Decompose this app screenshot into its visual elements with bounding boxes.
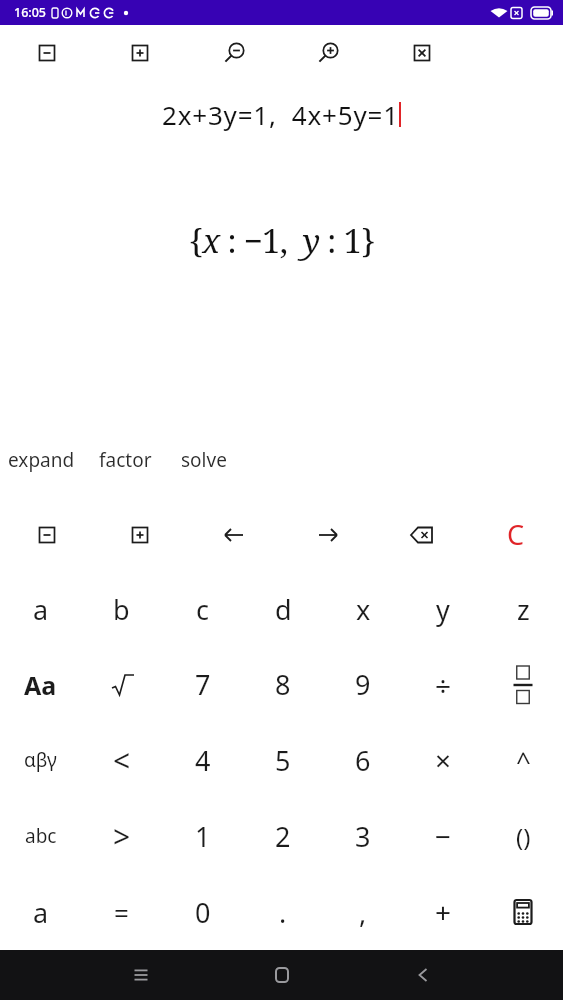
button[interactable] <box>281 25 375 81</box>
button[interactable]: 3 <box>323 798 403 874</box>
button[interactable] <box>81 647 162 722</box>
button[interactable]: d <box>243 572 323 647</box>
staticText: = <box>114 895 129 930</box>
staticText: > <box>113 816 131 857</box>
staticText: y <box>436 591 450 628</box>
button[interactable]: a <box>0 874 81 950</box>
button[interactable]: − <box>403 798 483 874</box>
button[interactable]: 7 <box>162 647 243 722</box>
staticText: a <box>33 591 49 628</box>
staticText: c <box>196 591 209 628</box>
staticText: factor <box>99 447 152 473</box>
button[interactable]: ^ <box>483 722 563 798</box>
button[interactable]: C <box>469 497 563 572</box>
staticText: x <box>356 591 371 628</box>
button[interactable]: abc <box>0 798 81 874</box>
button[interactable]: Aa <box>0 647 81 722</box>
button[interactable] <box>0 497 93 572</box>
button[interactable]: + <box>403 874 483 950</box>
staticText: 4 <box>195 742 211 779</box>
staticText: 5 <box>275 742 291 779</box>
staticText: () <box>516 820 531 853</box>
staticText: z <box>517 591 530 628</box>
staticText: 0 <box>195 894 211 931</box>
staticText: 7 <box>195 666 211 703</box>
button[interactable]: > <box>81 798 162 874</box>
button[interactable]: , <box>323 874 403 950</box>
button[interactable]: 2 <box>243 798 323 874</box>
staticText: × <box>435 741 452 779</box>
staticText: . <box>279 894 287 931</box>
button[interactable]: ÷ <box>403 647 483 722</box>
staticText: 6 <box>355 742 371 779</box>
staticText: < <box>113 740 131 781</box>
staticText: expand <box>8 447 75 473</box>
staticText: ÷ <box>435 666 452 704</box>
staticText: d <box>275 591 292 628</box>
button[interactable]: 9 <box>323 647 403 722</box>
button[interactable]: 5 <box>243 722 323 798</box>
button[interactable] <box>0 25 93 81</box>
button[interactable] <box>483 874 563 950</box>
staticText: solve <box>181 447 227 473</box>
staticText: 3 <box>355 818 371 855</box>
button[interactable]: a <box>0 572 81 647</box>
button[interactable]: solve <box>181 438 227 482</box>
button[interactable]: y <box>403 572 483 647</box>
staticText: 8 <box>275 666 291 703</box>
button[interactable]: × <box>403 722 483 798</box>
staticText: a <box>33 894 49 931</box>
button[interactable]: 1 <box>162 798 243 874</box>
staticText: Aa <box>24 668 57 702</box>
staticText: {x : −1, y : 1} <box>189 218 375 263</box>
button[interactable]: . <box>243 874 323 950</box>
button[interactable]: b <box>81 572 162 647</box>
staticText: αβγ <box>24 747 57 773</box>
button[interactable] <box>70 950 211 1000</box>
staticText: + <box>435 893 452 931</box>
staticText: C <box>507 516 525 553</box>
staticText: 9 <box>355 666 371 703</box>
button[interactable] <box>375 497 469 572</box>
button[interactable]: c <box>162 572 243 647</box>
button[interactable]: < <box>81 722 162 798</box>
button[interactable] <box>93 25 187 81</box>
staticText: 1 <box>195 818 211 855</box>
button[interactable] <box>375 25 469 81</box>
button[interactable]: z <box>483 572 563 647</box>
button[interactable] <box>281 497 375 572</box>
button[interactable]: () <box>483 798 563 874</box>
staticText: − <box>435 817 452 855</box>
button[interactable]: 6 <box>323 722 403 798</box>
staticText: b <box>113 591 130 628</box>
button[interactable] <box>187 497 281 572</box>
button[interactable]: αβγ <box>0 722 81 798</box>
staticText: , <box>359 894 367 931</box>
button[interactable]: factor <box>99 438 152 482</box>
button[interactable]: x <box>323 572 403 647</box>
button[interactable]: 8 <box>243 647 323 722</box>
staticText: ^ <box>516 743 531 778</box>
button[interactable] <box>483 647 563 722</box>
button[interactable] <box>187 25 281 81</box>
button[interactable]: 4 <box>162 722 243 798</box>
staticText: 2x+3y=1, 4x+5y=1 <box>162 97 399 132</box>
button[interactable]: = <box>81 874 162 950</box>
staticText: 16:05 <box>14 4 47 21</box>
staticText: 2 <box>275 818 291 855</box>
button[interactable] <box>93 497 187 572</box>
button[interactable]: expand <box>8 438 75 482</box>
button[interactable] <box>352 950 493 1000</box>
staticText: abc <box>25 823 57 849</box>
button[interactable] <box>211 950 352 1000</box>
button[interactable]: 0 <box>162 874 243 950</box>
